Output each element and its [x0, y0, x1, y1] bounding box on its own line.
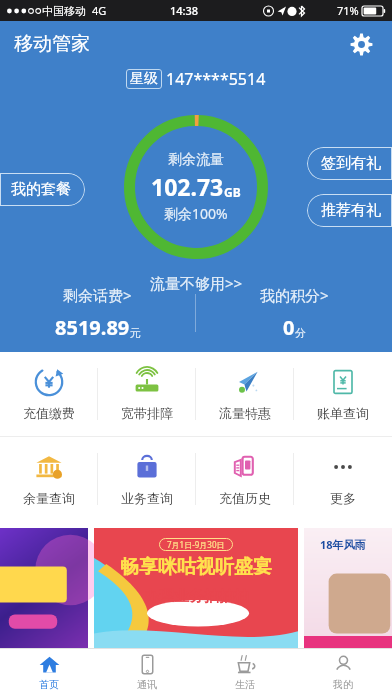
staticText: 首页	[39, 678, 59, 691]
button[interactable]: 充值缴费	[0, 352, 98, 436]
staticText: 4G	[92, 3, 107, 18]
staticText: 剩余话费>	[63, 285, 132, 305]
staticText: 147****5514	[166, 68, 266, 90]
staticText: 宽带排障	[121, 405, 173, 421]
staticText: 流量不够用>>	[150, 273, 243, 293]
staticText: 移动管家	[14, 32, 90, 56]
button[interactable]: 宽带排障	[98, 352, 196, 436]
staticText: 14:38	[170, 3, 199, 18]
button[interactable]: 我的	[294, 649, 392, 696]
button[interactable]: Settings	[344, 27, 378, 61]
staticText: 中国移动	[42, 4, 86, 18]
staticText: 充值历史	[219, 490, 271, 506]
staticText: 18年风雨	[320, 537, 366, 552]
button[interactable]: 更多	[294, 437, 392, 521]
staticText: 剩余100%	[164, 204, 228, 223]
button[interactable]: 我的套餐	[0, 173, 85, 206]
button[interactable]: 充值历史	[196, 437, 294, 521]
staticText: 充值缴费	[23, 405, 75, 421]
button[interactable]: 流量特惠	[196, 352, 294, 436]
staticText: 我的积分>	[260, 285, 329, 305]
staticText: 推荐有礼	[321, 201, 381, 220]
staticText: 畅享咪咕视听盛宴	[120, 555, 272, 579]
staticText: 办理业务抽抽抽	[144, 587, 249, 606]
staticText: 星级	[130, 70, 158, 88]
staticText: 通讯	[137, 678, 157, 691]
staticText: 生活	[235, 678, 255, 691]
staticText: 剩余流量	[168, 151, 224, 169]
button[interactable]: 账单查询	[294, 352, 392, 436]
staticText: 102.73	[151, 171, 224, 202]
button[interactable]: 通讯	[98, 649, 196, 696]
staticText: 71%	[337, 3, 359, 18]
staticText: 更多	[330, 490, 356, 506]
staticText: 分	[295, 326, 306, 340]
staticText: 账单查询	[317, 405, 369, 421]
staticText: 我的套餐	[11, 180, 71, 199]
staticText: GB	[224, 184, 241, 200]
staticText: 0	[283, 314, 295, 341]
button[interactable]: 7月1日-9月30日	[94, 528, 298, 648]
button[interactable]: 流量不够用>>	[142, 271, 251, 295]
staticText: 元	[130, 326, 141, 340]
staticText: 签到有礼	[321, 154, 381, 173]
button[interactable]: 剩余话费>	[0, 281, 195, 345]
staticText: 8519.89	[55, 314, 130, 341]
button[interactable]: 业务查询	[98, 437, 196, 521]
button[interactable]: 18年风雨	[304, 528, 392, 648]
button[interactable]: 余量查询	[0, 437, 98, 521]
staticText: 流量特惠	[219, 405, 271, 421]
staticText: 业务查询	[121, 490, 173, 506]
button[interactable]: 我的积分>	[196, 281, 392, 345]
button[interactable]: 生活	[196, 649, 294, 696]
staticText: 7月1日-9月30日	[167, 539, 225, 550]
staticText: 余量查询	[23, 490, 75, 506]
button[interactable]: 签到有礼	[307, 147, 392, 180]
staticText: 我的	[333, 678, 353, 691]
button[interactable]	[0, 528, 88, 648]
button[interactable]: 推荐有礼	[307, 194, 392, 227]
button[interactable]: 首页	[0, 649, 98, 696]
